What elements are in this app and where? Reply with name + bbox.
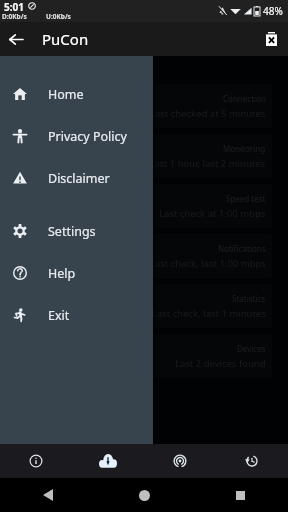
staticText: D:0Kb/s: [2, 12, 27, 21]
staticText: Disclaimer: [48, 170, 110, 187]
button[interactable]: Devices: [5, 334, 272, 378]
staticText: Last check at 1:00 mbps: [159, 207, 266, 220]
button[interactable]: History: [216, 444, 288, 478]
staticText: 5:01: [4, 0, 24, 12]
staticText: Devices: [237, 343, 266, 354]
button[interactable]: Monitor: [144, 444, 216, 478]
staticText: Last checked at 5 minutes: [150, 107, 266, 120]
button[interactable]: Connection: [5, 84, 272, 128]
button[interactable]: Exit: [0, 294, 153, 336]
button[interactable]: Privacy Policy: [0, 115, 153, 157]
button[interactable]: Notifications: [5, 234, 272, 278]
staticText: Last 2 devices found: [175, 357, 266, 370]
staticText: Settings: [48, 223, 96, 240]
button[interactable]: Back: [0, 23, 32, 55]
button[interactable]: Settings: [0, 210, 153, 252]
button[interactable]: Statistics: [5, 284, 272, 328]
staticText: 48%: [263, 4, 283, 18]
button[interactable]: Download: [72, 444, 144, 478]
staticText: Last check, last 1 minutes: [152, 307, 266, 320]
button[interactable]: Speed test: [5, 184, 272, 228]
staticText: Statistics: [232, 293, 266, 304]
staticText: Connection: [223, 93, 266, 104]
staticText: Last 1 hour, last 2 minutes: [149, 157, 266, 170]
button[interactable]: Home: [0, 73, 153, 115]
staticText: Monitoring: [223, 143, 266, 154]
staticText: Notifications: [218, 243, 266, 254]
staticText: PuCon: [42, 29, 89, 49]
staticText: Help: [48, 265, 76, 282]
button[interactable]: Delete: [255, 23, 287, 55]
staticText: U:0Kb/s: [46, 12, 71, 21]
button[interactable]: Info: [0, 444, 72, 478]
button[interactable]: Disclaimer: [0, 157, 153, 199]
staticText: Exit: [48, 307, 70, 324]
staticText: Speed test: [226, 193, 266, 204]
staticText: Home: [48, 86, 84, 103]
button[interactable]: Help: [0, 252, 153, 294]
button[interactable]: Monitoring: [5, 134, 272, 178]
staticText: Last check, last 1:00 mbps: [150, 257, 266, 270]
staticText: Privacy Policy: [48, 128, 127, 145]
